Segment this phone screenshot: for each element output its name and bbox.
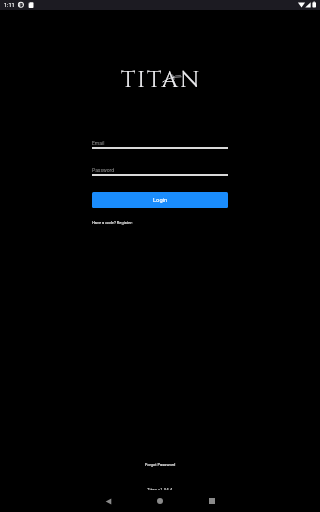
button[interactable]: Home — [147, 490, 173, 512]
staticText: 1:11 — [4, 2, 15, 8]
button[interactable]: Have a code? Register: — [92, 220, 133, 225]
staticText: Titan v1.04.4 — [147, 487, 173, 492]
button[interactable]: Back — [95, 490, 121, 512]
staticText: Password — [92, 167, 115, 173]
staticText: TITAN — [121, 65, 202, 96]
staticText: Have a code? Register: — [92, 220, 133, 225]
staticText: Forgot Password — [145, 462, 176, 467]
staticText: Email — [92, 140, 105, 146]
staticText: Login — [153, 197, 168, 204]
button[interactable]: Recent apps — [199, 490, 225, 512]
button[interactable]: Forgot Password — [145, 462, 176, 467]
button[interactable]: Login — [92, 192, 228, 208]
